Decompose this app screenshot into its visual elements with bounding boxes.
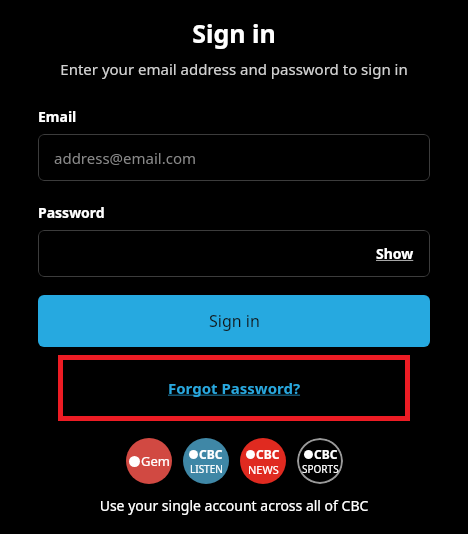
staticText: LISTEN (190, 462, 223, 476)
staticText: Gem (141, 452, 170, 470)
staticText: Password (38, 203, 105, 222)
staticText: address@email.com (54, 148, 197, 168)
staticText: CBC (314, 446, 338, 462)
staticText: CBC (199, 446, 223, 462)
button[interactable]: CBC Listen (183, 438, 229, 484)
button[interactable]: Show (38, 230, 430, 277)
staticText: Forgot Password? (168, 378, 301, 398)
button[interactable]: address@email.com (38, 134, 430, 181)
staticText: Sign in (0, 16, 468, 50)
button[interactable]: Show (360, 236, 430, 271)
button[interactable]: CBC News (240, 438, 286, 484)
staticText: Show (376, 244, 414, 263)
staticText: Email (38, 107, 77, 126)
button[interactable]: Forgot Password? (58, 355, 410, 421)
button[interactable]: CBC Gem (126, 438, 172, 484)
button[interactable]: CBC Sports (297, 438, 343, 484)
staticText: Sign in (209, 310, 260, 332)
staticText: NEWS (248, 462, 279, 477)
staticText: Enter your email address and password to… (0, 59, 468, 79)
staticText: SPORTS (302, 462, 339, 476)
button[interactable]: Sign in (38, 295, 430, 347)
staticText: Use your single account across all of CB… (0, 496, 468, 515)
staticText: CBC (256, 446, 280, 462)
